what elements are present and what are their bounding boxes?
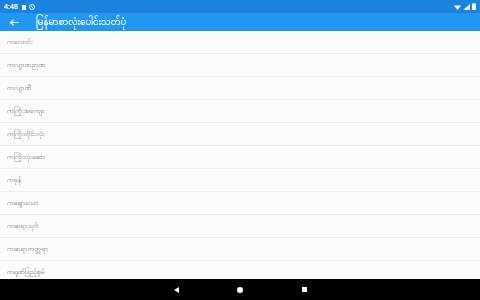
button[interactable]: ကလောင်း [0,31,480,54]
button[interactable]: ကကြိုးတိုင်းလုံး [0,123,480,146]
button[interactable]: ကရုဏ်ဖြည့်စွမ် [0,261,480,279]
button[interactable]: ကခုန် [0,169,480,192]
staticText: မြန်မာစာလုံးပေါင်းသတ်ပုံ [36,15,127,30]
staticText: ကချောသော [7,198,39,208]
staticText: ကကြိုးအကျော [7,106,45,116]
button[interactable]: ကလျာဏဉာဏ [0,54,480,77]
button[interactable]: Back [165,279,187,300]
button[interactable]: ကလျာဏီ [0,77,480,100]
staticText: ကလောင်း [7,37,33,47]
staticText: ကကြိုးတိုင်းလုံး [7,129,45,139]
button[interactable]: ကကြိုးအကျော [0,100,480,123]
button[interactable]: ကချောသော [0,192,480,215]
button[interactable]: ကဆရာသုဗ် [0,215,480,238]
button[interactable]: ကကြိုးလုံးဆော [0,146,480,169]
button[interactable]: Back [6,14,22,30]
staticText: ကခုန် [7,175,22,185]
staticText: ကဆရာကတ္တရာ [7,244,49,254]
button[interactable]: Home [229,279,251,300]
staticText: ကဆရာသုဗ် [7,221,39,231]
staticText: 4:48 [4,2,18,12]
staticText: ကရုဏ်ဖြည့်စွမ် [7,267,45,277]
button[interactable]: Recent apps [293,279,315,300]
staticText: ကလျာဏဉာဏ [7,60,46,70]
staticText: ကကြိုးလုံးဆော [7,152,46,162]
button[interactable]: ကဆရာကတ္တရာ [0,238,480,261]
staticText: ကလျာဏီ [7,83,32,93]
